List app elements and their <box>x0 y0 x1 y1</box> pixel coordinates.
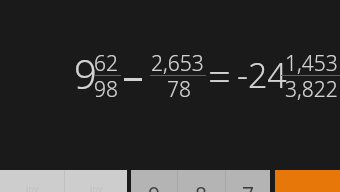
staticText: 98 <box>94 75 118 104</box>
button[interactable]: 9 <box>131 170 177 192</box>
staticText: a⁄b <box>19 190 46 192</box>
button[interactable]: 8 <box>178 170 225 192</box>
staticText: 9 <box>148 181 161 192</box>
staticText: inv <box>90 182 103 192</box>
staticText: 9 <box>74 46 97 100</box>
button[interactable]: 7 <box>226 170 270 192</box>
staticText: = <box>208 48 231 102</box>
staticText: inv <box>26 182 39 192</box>
staticText: -24 <box>237 52 287 98</box>
staticText: 3,822 <box>285 75 338 104</box>
staticText: 8 <box>195 181 208 192</box>
staticText: 2,653 <box>151 49 204 78</box>
staticText: 1,453 <box>285 49 338 78</box>
staticText: 78 <box>167 75 191 104</box>
staticText: 62 <box>94 49 118 78</box>
staticText: 7 <box>242 181 255 192</box>
staticText: ( ) <box>85 190 108 192</box>
